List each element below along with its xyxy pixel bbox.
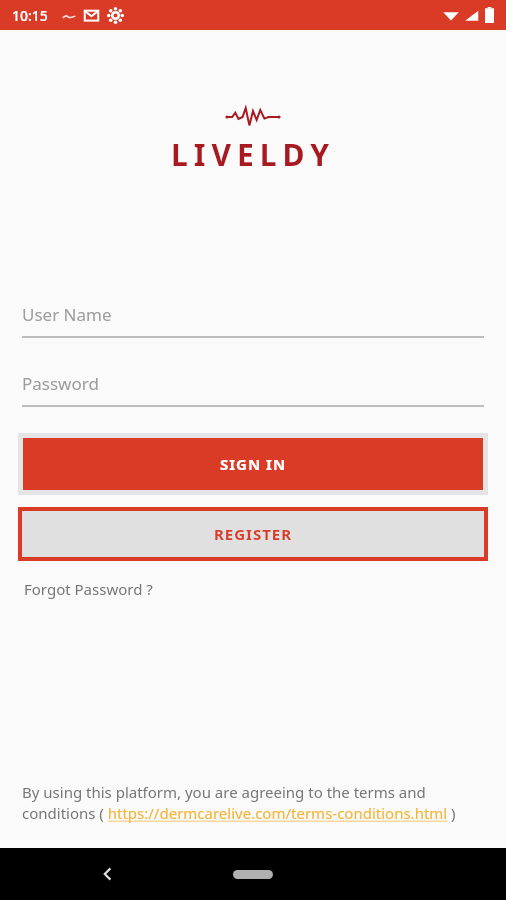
staticText: By using this platform, you are agreeing… [22, 782, 484, 824]
staticText: User Name [22, 303, 112, 326]
button[interactable]: Home [229, 865, 277, 883]
staticText: 10:15 [12, 6, 48, 25]
button[interactable]: SIGN IN [23, 438, 483, 490]
staticText: REGISTER [214, 524, 293, 544]
button[interactable]: User Name [22, 303, 484, 338]
button[interactable]: REGISTER [18, 507, 488, 561]
staticText: SIGN IN [220, 454, 287, 474]
button[interactable]: By using this platform, you are agreeing… [22, 782, 484, 824]
staticText: Password [22, 372, 99, 395]
staticText: Forgot Password ? [24, 579, 153, 599]
button[interactable]: Password [22, 372, 484, 407]
button[interactable]: Back [92, 858, 124, 890]
staticText: LIVELDY [171, 134, 335, 175]
button[interactable]: Forgot Password ? [22, 575, 155, 603]
